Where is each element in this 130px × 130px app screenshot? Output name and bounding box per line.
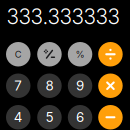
- staticText: 6: [76, 109, 84, 125]
- staticText: %: [75, 49, 84, 60]
- button[interactable]: 6: [68, 105, 92, 129]
- staticText: C: [15, 49, 22, 60]
- button[interactable]: 9: [68, 73, 92, 98]
- staticText: 5: [45, 109, 53, 125]
- staticText: 4: [14, 109, 23, 125]
- button[interactable]: Divide: [98, 42, 123, 66]
- button[interactable]: Subtract: [98, 105, 123, 129]
- staticText: 8: [45, 78, 53, 94]
- button[interactable]: C: [6, 42, 30, 66]
- staticText: 9: [76, 78, 84, 94]
- button[interactable]: %: [68, 42, 92, 66]
- button[interactable]: 8: [37, 73, 62, 98]
- button[interactable]: 5: [37, 105, 62, 129]
- button[interactable]: 7: [6, 73, 30, 98]
- button[interactable]: Multiply: [98, 73, 123, 98]
- button[interactable]: 4: [6, 105, 30, 129]
- button[interactable]: Plus minus: [37, 42, 62, 66]
- staticText: 333.333333: [6, 4, 119, 29]
- staticText: 7: [14, 78, 22, 94]
